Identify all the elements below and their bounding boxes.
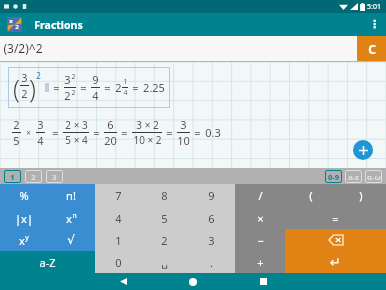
staticText: a-Z — [39, 255, 56, 270]
staticText: 3 — [64, 72, 71, 87]
button[interactable]: (3/2)^2 — [0, 36, 357, 62]
staticText: = — [104, 80, 111, 95]
staticText: 2 — [15, 23, 19, 31]
button[interactable]: 4 — [95, 207, 141, 229]
button[interactable]: ) — [336, 184, 386, 207]
button[interactable]: Backspace — [285, 229, 386, 251]
staticText: 2 — [21, 86, 28, 101]
staticText: 4 — [115, 211, 122, 226]
button[interactable]: / — [235, 184, 286, 207]
staticText: = — [121, 125, 128, 140]
button[interactable]: − — [235, 229, 285, 251]
staticText: ↵ — [330, 255, 341, 270]
button[interactable]: % — [0, 184, 47, 207]
staticText: 6 — [107, 117, 114, 132]
staticText: = — [194, 125, 201, 140]
staticText: 2 — [71, 88, 76, 98]
button[interactable]: x — [47, 207, 95, 229]
button[interactable]: x — [0, 229, 47, 251]
button[interactable]: 2 — [12, 117, 221, 148]
staticText: × — [257, 211, 264, 226]
staticText: 7 — [115, 188, 122, 203]
button[interactable]: + — [235, 251, 285, 273]
staticText: 5 — [13, 133, 20, 148]
button[interactable]: √ — [47, 229, 95, 251]
button[interactable]: 8 — [141, 184, 188, 207]
button[interactable]: Back — [88, 273, 158, 290]
staticText: 4 — [123, 88, 128, 98]
button[interactable]: n! — [47, 184, 95, 207]
staticText: = — [80, 80, 87, 95]
staticText: 2 — [71, 72, 76, 82]
staticText: ( — [309, 188, 313, 203]
button[interactable]: ␣ — [141, 251, 188, 273]
staticText: ⋮ — [369, 18, 380, 31]
staticText: 20 — [104, 133, 117, 148]
staticText: ) — [29, 71, 36, 105]
staticText: 9 — [208, 188, 215, 203]
button[interactable]: 7 — [95, 184, 141, 207]
button[interactable]: 3 — [188, 229, 235, 251]
staticText: = — [53, 80, 60, 95]
staticText: 3 — [37, 117, 44, 132]
staticText: × — [26, 127, 31, 138]
button[interactable]: = — [285, 207, 386, 229]
staticText: 1 — [123, 77, 128, 87]
button[interactable]: 2 — [141, 229, 188, 251]
button[interactable]: Home — [158, 273, 228, 290]
staticText: 2 — [36, 70, 41, 81]
staticText: |x| — [15, 211, 33, 226]
staticText: / — [258, 188, 263, 203]
staticText: 6 — [208, 211, 215, 226]
staticText: x — [19, 233, 25, 248]
button[interactable]: α-ω — [365, 170, 382, 183]
staticText: 3 — [180, 117, 187, 132]
staticText: C — [368, 41, 376, 57]
button[interactable]: App icon — [7, 17, 22, 32]
button[interactable]: 9 — [188, 184, 235, 207]
button[interactable]: More options — [363, 13, 386, 36]
button[interactable]: . — [188, 251, 235, 273]
staticText: 9 — [92, 72, 99, 87]
button[interactable]: 0-9 — [325, 170, 342, 183]
staticText: . — [210, 255, 213, 270]
button[interactable]: 6 — [188, 207, 235, 229]
staticText: 2.25 — [143, 80, 165, 95]
staticText: 3 — [52, 172, 57, 182]
staticText: 3 — [21, 70, 28, 85]
button[interactable]: Add — [353, 140, 373, 160]
button[interactable]: × — [235, 207, 285, 229]
staticText: 2 — [13, 117, 20, 132]
button[interactable]: ( — [286, 184, 336, 207]
button[interactable]: Recents — [228, 273, 298, 290]
staticText: 10 — [177, 133, 190, 148]
button[interactable]: Enter — [285, 251, 386, 273]
staticText: Fractions — [34, 18, 83, 32]
staticText: % — [19, 188, 29, 203]
staticText: 2 — [115, 80, 122, 95]
staticText: = — [166, 125, 173, 140]
button[interactable]: |x| — [0, 207, 47, 229]
staticText: 0-9 — [328, 172, 339, 182]
staticText: x — [9, 17, 13, 25]
staticText: 1 — [10, 172, 15, 182]
staticText: α-ω — [367, 172, 381, 182]
button[interactable]: a-Z — [0, 251, 95, 273]
button[interactable]: 3 — [46, 170, 63, 183]
button[interactable]: 1 — [4, 170, 21, 183]
staticText: = — [93, 125, 100, 140]
staticText: 2 × 3 — [65, 118, 88, 132]
button[interactable]: C — [357, 36, 386, 62]
staticText: − — [257, 233, 264, 248]
staticText: x — [66, 211, 72, 226]
button[interactable]: ( — [13, 70, 165, 105]
button[interactable]: a-z — [345, 170, 362, 183]
button[interactable]: 1 — [95, 229, 141, 251]
button[interactable]: 0 — [95, 251, 141, 273]
button[interactable]: 5 — [141, 207, 188, 229]
staticText: = — [132, 80, 139, 95]
button[interactable]: 2 — [25, 170, 42, 183]
staticText: 2 — [161, 233, 168, 248]
staticText: 10 × 2 — [133, 133, 162, 147]
staticText: 1 — [115, 233, 122, 248]
